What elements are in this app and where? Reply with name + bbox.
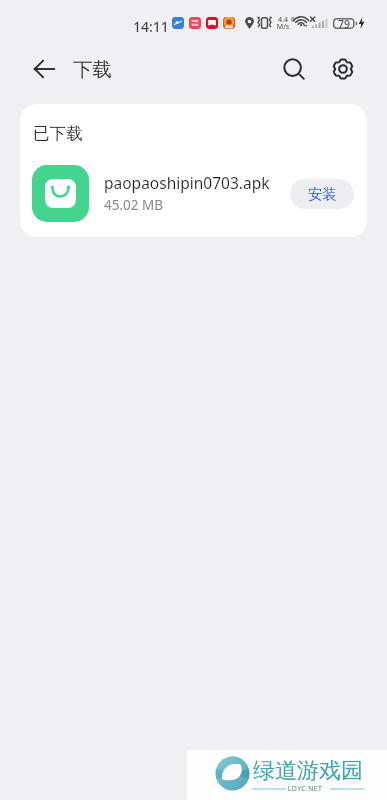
staticText: LDYC.NET	[286, 784, 324, 794]
staticText: 4.4	[276, 15, 290, 25]
button[interactable]: Settings	[325, 51, 361, 87]
staticText: 安装	[308, 185, 337, 203]
staticText: 下载	[73, 57, 112, 82]
staticText: 45.02 MB	[104, 196, 164, 214]
button[interactable]: 安装	[290, 179, 354, 209]
button[interactable]: Back	[26, 52, 66, 86]
staticText: paopaoshipin0703.apk	[104, 172, 270, 193]
staticText: 绿道游戏园	[253, 757, 363, 785]
staticText: 6	[291, 15, 296, 25]
staticText: 14:11	[133, 17, 169, 36]
staticText: 79	[337, 17, 351, 31]
button[interactable]: Search	[276, 51, 312, 87]
staticText: M/s	[276, 22, 290, 32]
staticText: 已下载	[33, 123, 83, 144]
